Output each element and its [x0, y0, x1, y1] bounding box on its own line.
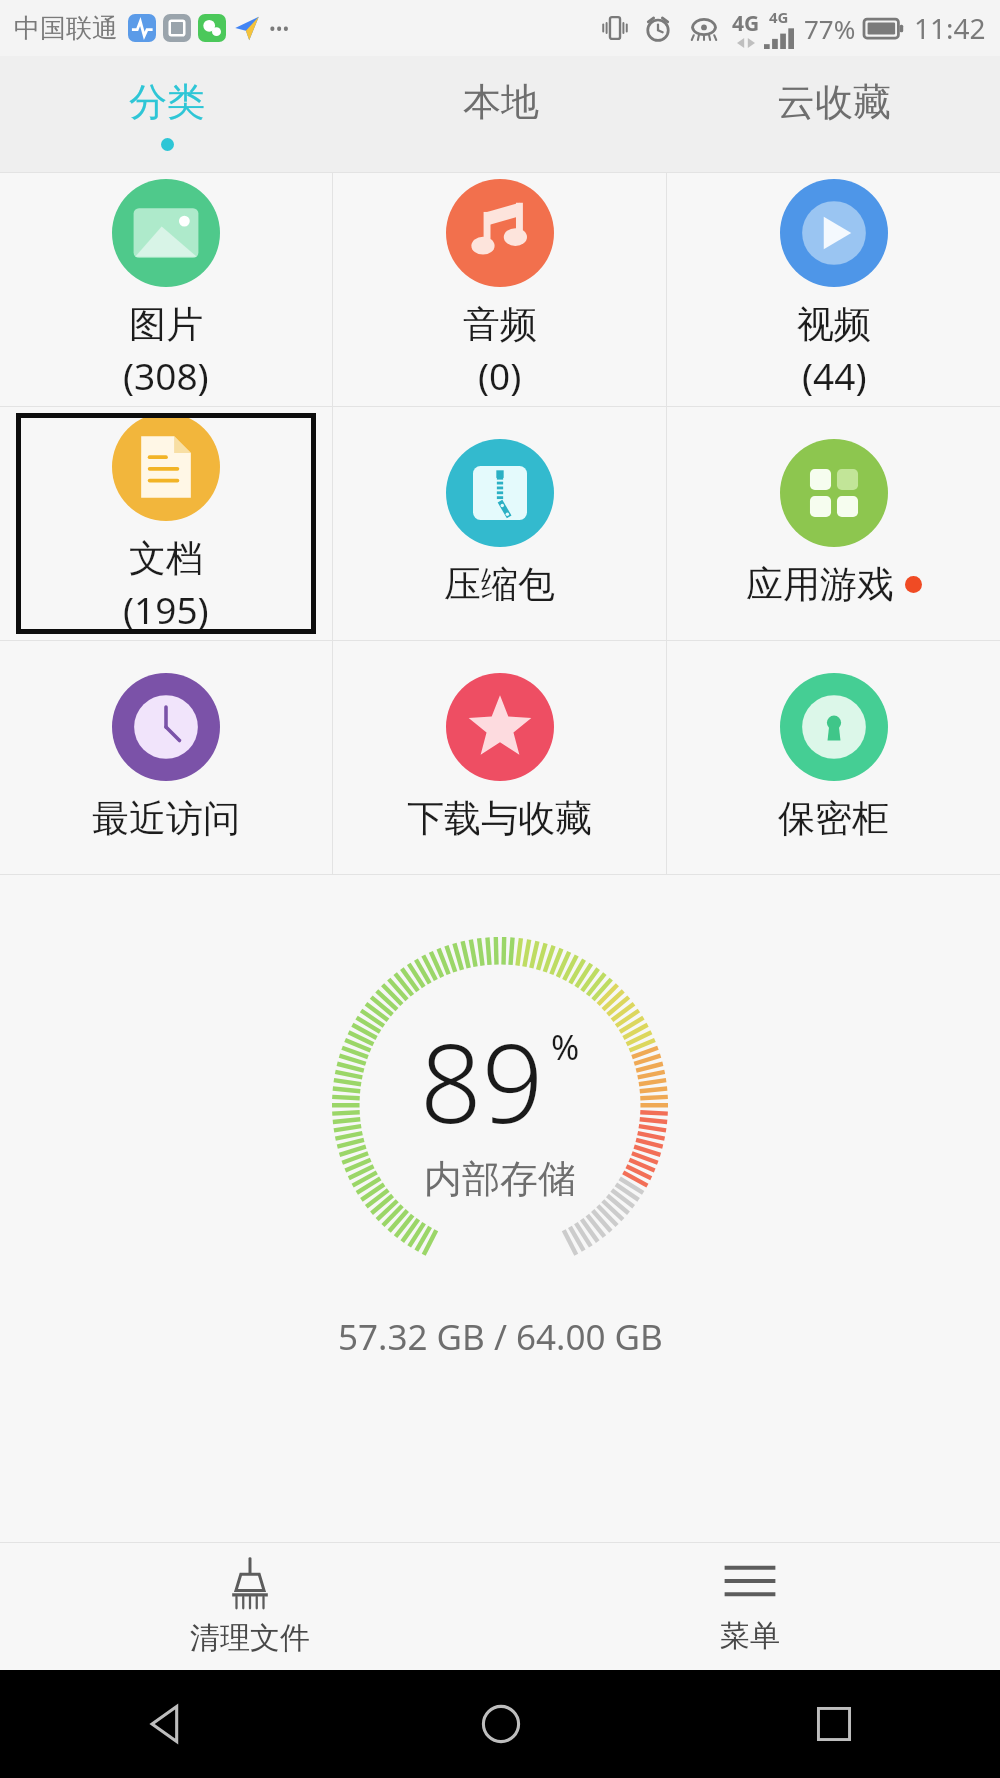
button[interactable]: 云收藏 [667, 56, 1000, 172]
staticText: 图片 [129, 301, 203, 348]
button[interactable]: 菜单 [500, 1543, 1000, 1670]
staticText: 4G [769, 7, 789, 27]
staticText: (44) [802, 350, 867, 400]
button[interactable]: 清理文件 [0, 1543, 500, 1670]
staticText: 清理文件 [190, 1619, 310, 1657]
button[interactable]: 音频 [333, 173, 666, 406]
staticText: (308) [123, 350, 209, 400]
staticText: 11:42 [914, 9, 986, 47]
staticText: 保密柜 [778, 795, 889, 842]
button[interactable]: 图片 [0, 173, 332, 406]
button[interactable]: Back [0, 1670, 334, 1778]
staticText: 菜单 [720, 1617, 780, 1655]
button[interactable]: Home [334, 1670, 667, 1778]
staticText: 应用游戏 [746, 561, 894, 608]
staticText: % [551, 1024, 580, 1070]
staticText: 下载与收藏 [407, 795, 592, 842]
staticText: 分类 [129, 78, 205, 126]
staticText: (195) [123, 584, 209, 634]
staticText: 文档 [129, 535, 203, 582]
staticText: 4G [732, 9, 760, 38]
staticText: 内部存储 [424, 1155, 576, 1203]
button[interactable]: 文档 [0, 407, 332, 640]
staticText: 压缩包 [444, 561, 555, 608]
staticText: 中国联通 [14, 12, 118, 45]
staticText: 77% [804, 11, 856, 46]
staticText: 音频 [463, 301, 537, 348]
staticText: 89 [420, 1008, 544, 1155]
staticText: 最近访问 [92, 795, 240, 842]
button[interactable]: 下载与收藏 [333, 641, 666, 874]
staticText: ••• [269, 16, 290, 41]
staticText: 本地 [463, 78, 539, 126]
button[interactable]: 本地 [334, 56, 667, 172]
button[interactable]: 保密柜 [667, 641, 1000, 874]
button[interactable]: 最近访问 [0, 641, 332, 874]
staticText: (0) [478, 350, 522, 400]
staticText: 57.32 GB / 64.00 GB [338, 1313, 663, 1361]
staticText: 云收藏 [777, 78, 891, 126]
button[interactable]: Recent apps [667, 1670, 1000, 1778]
button[interactable]: 压缩包 [333, 407, 666, 640]
button[interactable]: 应用游戏 [667, 407, 1000, 640]
button[interactable]: 视频 [667, 173, 1000, 406]
button[interactable]: 分类 [0, 56, 334, 172]
staticText: 视频 [797, 301, 871, 348]
